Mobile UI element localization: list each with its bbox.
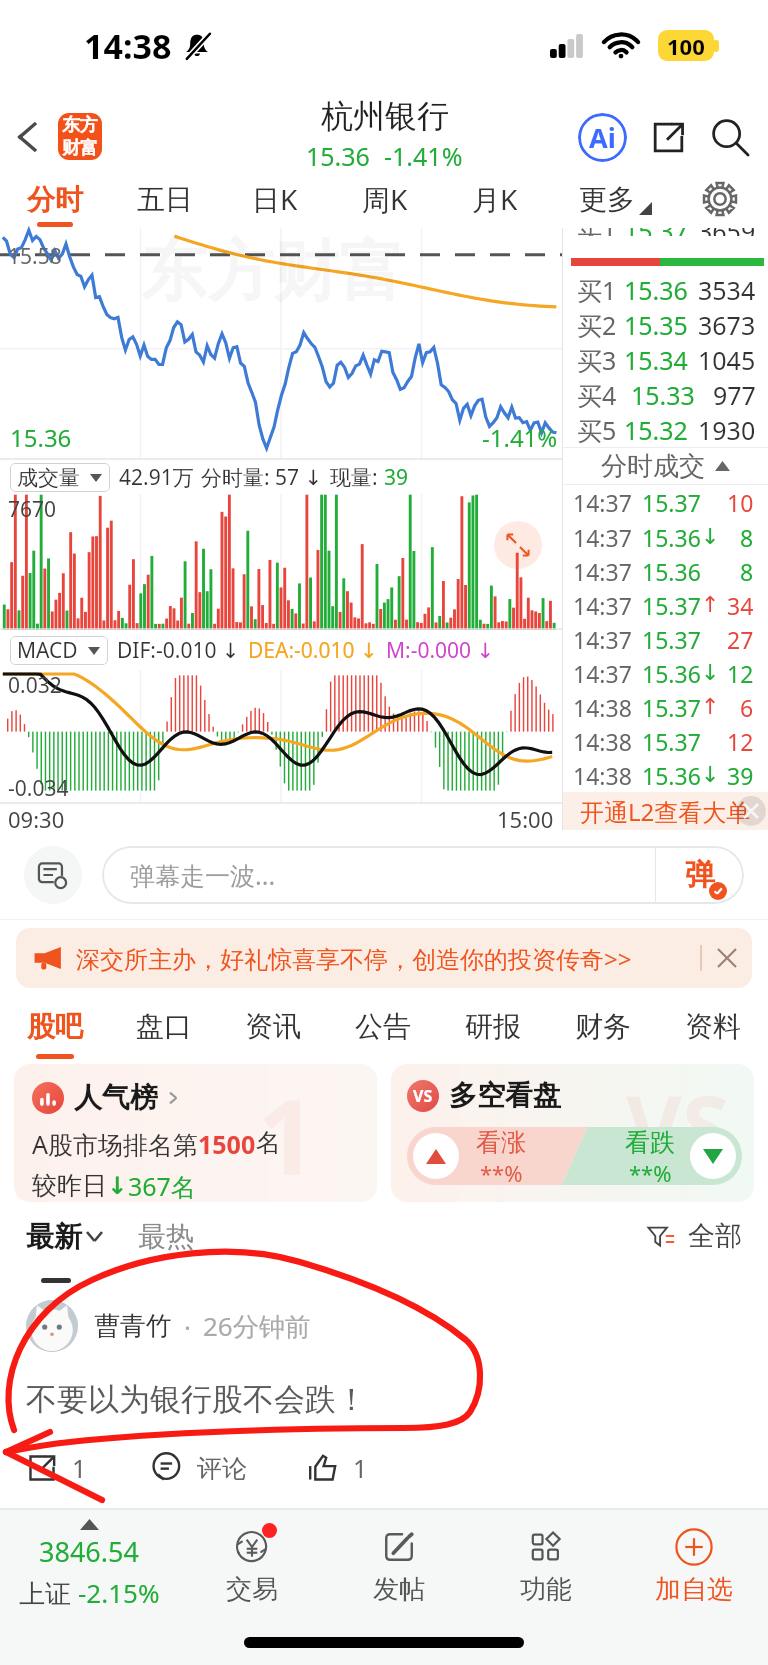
button[interactable]: 14:38 bbox=[573, 690, 754, 724]
staticText: 15.36 bbox=[306, 139, 370, 173]
button[interactable]: 买4 bbox=[577, 377, 756, 412]
button[interactable]: Fullscreen chart bbox=[494, 521, 542, 569]
staticText: 15.33 bbox=[631, 378, 695, 412]
staticText: 资讯 bbox=[245, 1009, 301, 1044]
staticText: 评论 bbox=[197, 1453, 247, 1484]
staticText: 12 bbox=[727, 658, 754, 689]
staticText: 财富 bbox=[62, 137, 98, 160]
staticText: 买4 bbox=[577, 378, 617, 412]
staticText: 加自选 bbox=[655, 1573, 733, 1606]
button[interactable]: 日K bbox=[220, 178, 330, 228]
staticText: MACD bbox=[17, 636, 78, 665]
staticText: 杭州银行 bbox=[321, 96, 449, 136]
button[interactable]: 分时成交 bbox=[563, 448, 768, 484]
button[interactable]: 曹青竹 bbox=[0, 1290, 768, 1508]
button[interactable]: Close banner bbox=[702, 928, 752, 988]
staticText: 1045 bbox=[698, 343, 756, 377]
button[interactable]: 14:37 bbox=[573, 622, 754, 656]
staticText: 公告 bbox=[355, 1009, 411, 1044]
button[interactable]: 3846.54 bbox=[0, 1510, 178, 1620]
button[interactable]: 功能 bbox=[472, 1510, 620, 1620]
button[interactable]: 最新 bbox=[26, 1202, 102, 1290]
button[interactable]: 月K bbox=[440, 178, 550, 228]
button[interactable]: Danmu settings bbox=[24, 846, 82, 904]
staticText: 15.36 bbox=[624, 273, 688, 307]
button[interactable]: 股吧 bbox=[0, 996, 109, 1064]
staticText: 研报 bbox=[465, 1009, 521, 1044]
button[interactable]: 更多 bbox=[573, 178, 658, 228]
button[interactable]: 深交所主办，好礼惊喜享不停，创造你的投资传奇>> bbox=[16, 928, 752, 988]
button[interactable]: MACD bbox=[17, 636, 100, 665]
button[interactable]: 盘口 bbox=[109, 996, 218, 1064]
button[interactable]: 14:37 bbox=[573, 520, 754, 554]
staticText: ↓ bbox=[701, 660, 720, 686]
staticText: 15.37 bbox=[624, 228, 688, 236]
button[interactable]: 成交量 bbox=[17, 463, 102, 492]
button[interactable]: 财务 bbox=[548, 996, 658, 1064]
button[interactable]: 买1 bbox=[577, 272, 756, 307]
button[interactable]: Search bbox=[701, 108, 759, 166]
button[interactable]: 交易 bbox=[178, 1510, 325, 1620]
staticText: ↓ bbox=[701, 762, 720, 788]
button[interactable]: 周K bbox=[330, 178, 440, 228]
staticText: 14:37 bbox=[573, 487, 632, 518]
staticText: 14:37 bbox=[573, 590, 632, 621]
staticText: 弹 bbox=[685, 856, 715, 894]
button[interactable]: 全部 bbox=[646, 1202, 742, 1290]
staticText: 东方财富 bbox=[141, 230, 405, 313]
staticText: 100 bbox=[667, 31, 705, 61]
staticText: 买1 bbox=[577, 228, 617, 236]
staticText: 月K bbox=[472, 180, 518, 218]
button[interactable]: 14:37 bbox=[573, 656, 754, 690]
button[interactable]: 14:37 bbox=[573, 588, 754, 622]
button[interactable]: 买2 bbox=[577, 307, 756, 342]
button[interactable]: 14:37 bbox=[573, 554, 754, 588]
button[interactable]: 买5 bbox=[577, 412, 756, 447]
staticText: ↑ bbox=[701, 694, 720, 720]
button[interactable]: 研报 bbox=[438, 996, 548, 1064]
staticText: -0.034 bbox=[8, 774, 69, 803]
staticText: 1930 bbox=[698, 413, 756, 447]
staticText: 15.36 bbox=[642, 522, 701, 553]
button[interactable]: 分时 bbox=[0, 178, 110, 228]
button[interactable]: 弹幕走一波... bbox=[102, 846, 744, 904]
button[interactable]: 14:38 bbox=[573, 758, 754, 792]
staticText: 东方 bbox=[62, 114, 98, 137]
staticText: **% bbox=[480, 1158, 523, 1185]
button[interactable]: VS bbox=[391, 1064, 754, 1202]
staticText: 15.36 bbox=[642, 658, 701, 689]
staticText: 买3 bbox=[577, 343, 617, 377]
staticText: 27 bbox=[727, 624, 754, 655]
button[interactable]: 资料 bbox=[658, 996, 768, 1064]
button[interactable]: 资讯 bbox=[218, 996, 328, 1064]
staticText: VS bbox=[626, 1066, 730, 1183]
button[interactable]: 14:37 bbox=[573, 485, 754, 520]
staticText: 较昨日 bbox=[32, 1170, 107, 1201]
staticText: 367名 bbox=[128, 1169, 196, 1202]
staticText: 12 bbox=[727, 726, 754, 757]
staticText: 1 bbox=[72, 1451, 87, 1485]
button[interactable]: 发帖 bbox=[325, 1510, 472, 1620]
button[interactable]: 公告 bbox=[328, 996, 438, 1064]
button[interactable]: Share bbox=[640, 109, 696, 165]
staticText: 1 bbox=[257, 1064, 317, 1202]
staticText: -1.41% bbox=[384, 139, 463, 173]
button[interactable]: 买3 bbox=[577, 342, 756, 377]
button[interactable]: 1 bbox=[14, 1064, 377, 1202]
button[interactable]: Close promotion bbox=[736, 796, 766, 826]
staticText: 14:37 bbox=[573, 522, 632, 553]
staticText: 成交量 bbox=[17, 465, 80, 491]
staticText: 最新 bbox=[26, 1219, 82, 1254]
staticText: 曹青竹 bbox=[94, 1310, 172, 1343]
button[interactable]: Back bbox=[0, 95, 56, 178]
staticText: 五日 bbox=[137, 182, 193, 217]
button[interactable]: East Money bbox=[58, 113, 102, 160]
button[interactable]: AI assistant bbox=[570, 105, 634, 169]
staticText: 看跌 bbox=[625, 1127, 675, 1158]
staticText: 名 bbox=[256, 1127, 281, 1158]
button[interactable]: 最热 bbox=[138, 1202, 194, 1290]
button[interactable]: 五日 bbox=[110, 178, 220, 228]
button[interactable]: 加自选 bbox=[620, 1510, 768, 1620]
button[interactable]: Chart settings bbox=[692, 174, 748, 224]
button[interactable]: 14:38 bbox=[573, 724, 754, 758]
